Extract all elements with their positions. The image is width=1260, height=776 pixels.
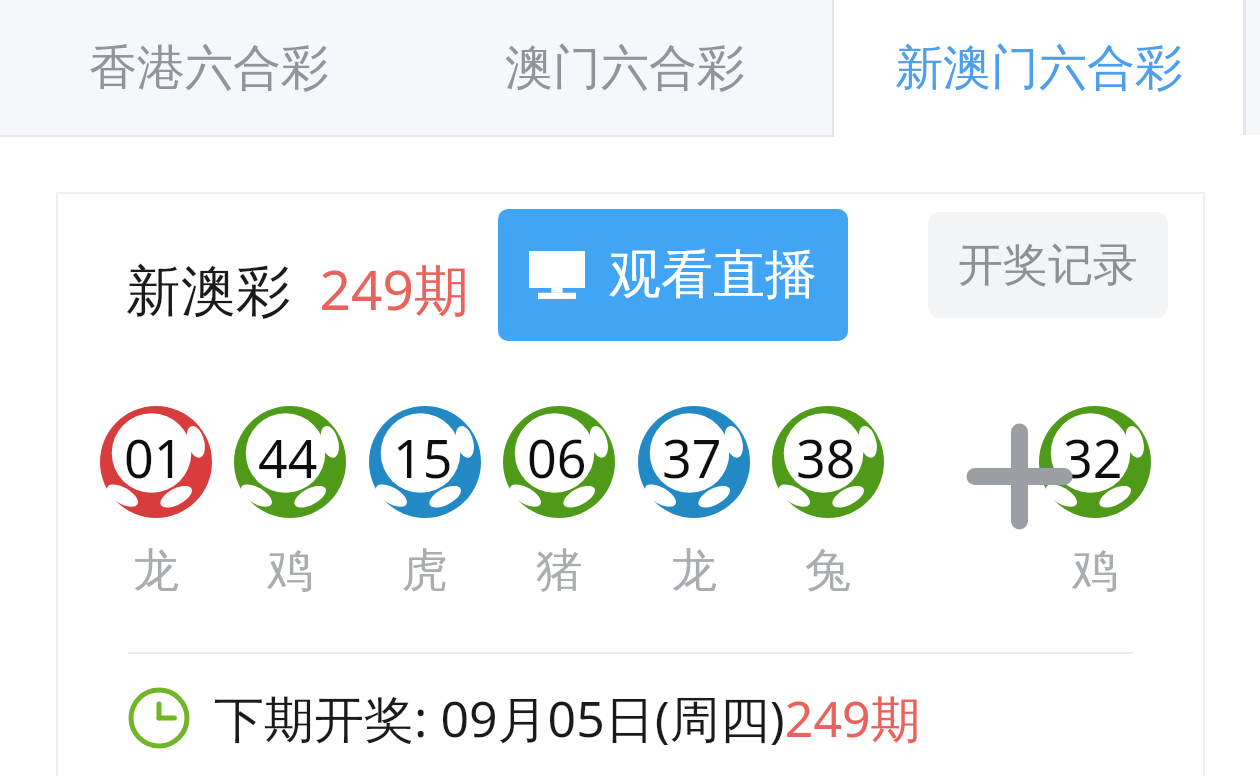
staticText: 龙 [671, 542, 717, 600]
staticText: 44 [258, 422, 318, 493]
staticText: 新澳彩 249期 [126, 251, 469, 326]
staticText: 鸡 [1072, 542, 1118, 600]
staticText: 38 [796, 422, 856, 493]
staticText: 龙 [133, 542, 179, 600]
staticText: 01 [124, 422, 184, 493]
staticText: 澳门六合彩 [505, 38, 745, 98]
other: 加号 [973, 430, 1066, 523]
button[interactable]: 澳门六合彩 [417, 0, 832, 135]
staticText: 猪 [536, 542, 582, 600]
staticText: 下期开奖: 09月05日(周四)249期 [214, 684, 921, 752]
button[interactable]: 开奖记录 [928, 212, 1168, 318]
button[interactable]: 新澳门六合彩 [834, 0, 1243, 135]
staticText: 开奖记录 [958, 237, 1138, 294]
staticText: 32 [1063, 422, 1123, 493]
staticText: 鸡 [267, 542, 313, 600]
button[interactable]: 香港六合彩 [0, 0, 417, 135]
staticText: 香港六合彩 [89, 38, 329, 98]
staticText: 37 [662, 422, 722, 493]
staticText: 15 [393, 422, 453, 493]
staticText: 新澳门六合彩 [895, 38, 1183, 98]
button[interactable]: 观看直播 [498, 209, 848, 341]
staticText: 兔 [805, 542, 851, 600]
staticText: 虎 [402, 542, 448, 600]
staticText: 06 [527, 422, 587, 493]
staticText: 观看直播 [609, 242, 817, 308]
